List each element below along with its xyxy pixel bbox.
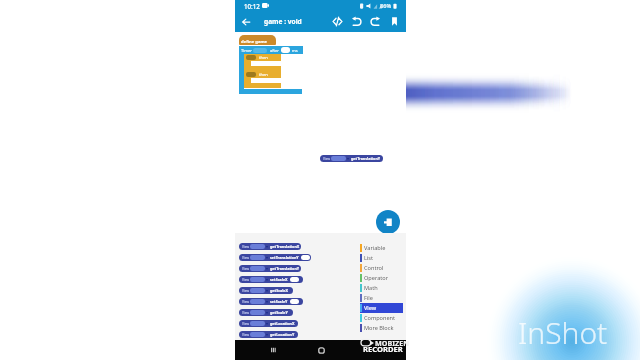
button[interactable]: View [239,265,301,272]
staticText: 10:12 [244,2,260,10]
staticText: Timer [241,48,252,53]
staticText: View [242,278,249,282]
staticText: View [364,304,377,312]
staticText: then [259,72,268,77]
staticText: game : void [264,17,302,26]
button[interactable]: Component [360,313,403,323]
button[interactable]: Timer [239,46,303,54]
staticText: Component [364,314,396,322]
button[interactable]: Back [237,11,255,32]
staticText: getLocationY [270,332,295,337]
staticText: MOBIZEN [375,338,410,348]
button[interactable]: View [239,287,293,294]
staticText: View [242,267,249,271]
button[interactable]: then [244,54,281,61]
button[interactable]: More Block [360,323,403,333]
staticText: View [242,311,249,315]
staticText: View [242,289,249,293]
button[interactable]: Redo [366,11,385,32]
button[interactable]: Back [358,340,378,360]
staticText: getScaleX [270,288,289,293]
staticText: 86% [380,2,392,10]
button[interactable]: Variable [360,243,403,253]
staticText: getTranslationX [270,244,300,249]
staticText: getLocationX [270,321,295,326]
staticText: More Block [364,324,394,332]
staticText: then [259,55,268,60]
staticText: getScaleY [270,310,288,315]
staticText: View [242,300,249,304]
staticText: setTranslationY [270,255,299,260]
staticText: File [364,294,373,302]
button[interactable]: define game [239,35,276,45]
button[interactable]: View [239,276,303,283]
staticText: View [242,245,249,249]
button[interactable]: Recent apps [263,340,283,360]
staticText: getTranslationY [270,266,300,271]
staticText: Variable [364,244,386,252]
staticText: Operator [364,274,389,282]
button[interactable]: List [360,253,403,263]
staticText: RECORDER [363,344,403,354]
button[interactable]: Control [360,263,403,273]
button[interactable]: File [360,293,403,303]
button[interactable]: View [239,331,298,338]
staticText: define game [241,39,268,45]
staticText: View [242,333,249,337]
button[interactable]: View [239,309,293,316]
button[interactable]: Undo [347,11,366,32]
button[interactable]: Math [360,283,403,293]
button[interactable]: View [239,243,301,250]
button[interactable]: Show code [328,11,347,32]
button[interactable]: View [239,298,303,305]
button[interactable]: View [239,254,311,261]
staticText: setScaleX [270,277,288,282]
staticText: getTranslationY [351,156,381,161]
staticText: InShot [518,312,608,353]
staticText: after [270,48,279,53]
staticText: List [364,254,374,262]
staticText: Control [364,264,384,272]
button[interactable]: View [239,320,298,327]
button[interactable]: Home [311,340,331,360]
staticText: Math [364,284,378,292]
staticText: setScaleY [270,299,288,304]
staticText: View [242,322,249,326]
button[interactable]: View [320,155,383,162]
button[interactable]: then [244,71,281,78]
staticText: ms [292,48,298,53]
button[interactable]: View [360,303,403,313]
button[interactable]: Save [385,11,404,32]
staticText: View [242,256,249,260]
button[interactable]: Operator [360,273,403,283]
staticText: View [323,157,330,161]
button[interactable]: Add block [376,210,400,234]
